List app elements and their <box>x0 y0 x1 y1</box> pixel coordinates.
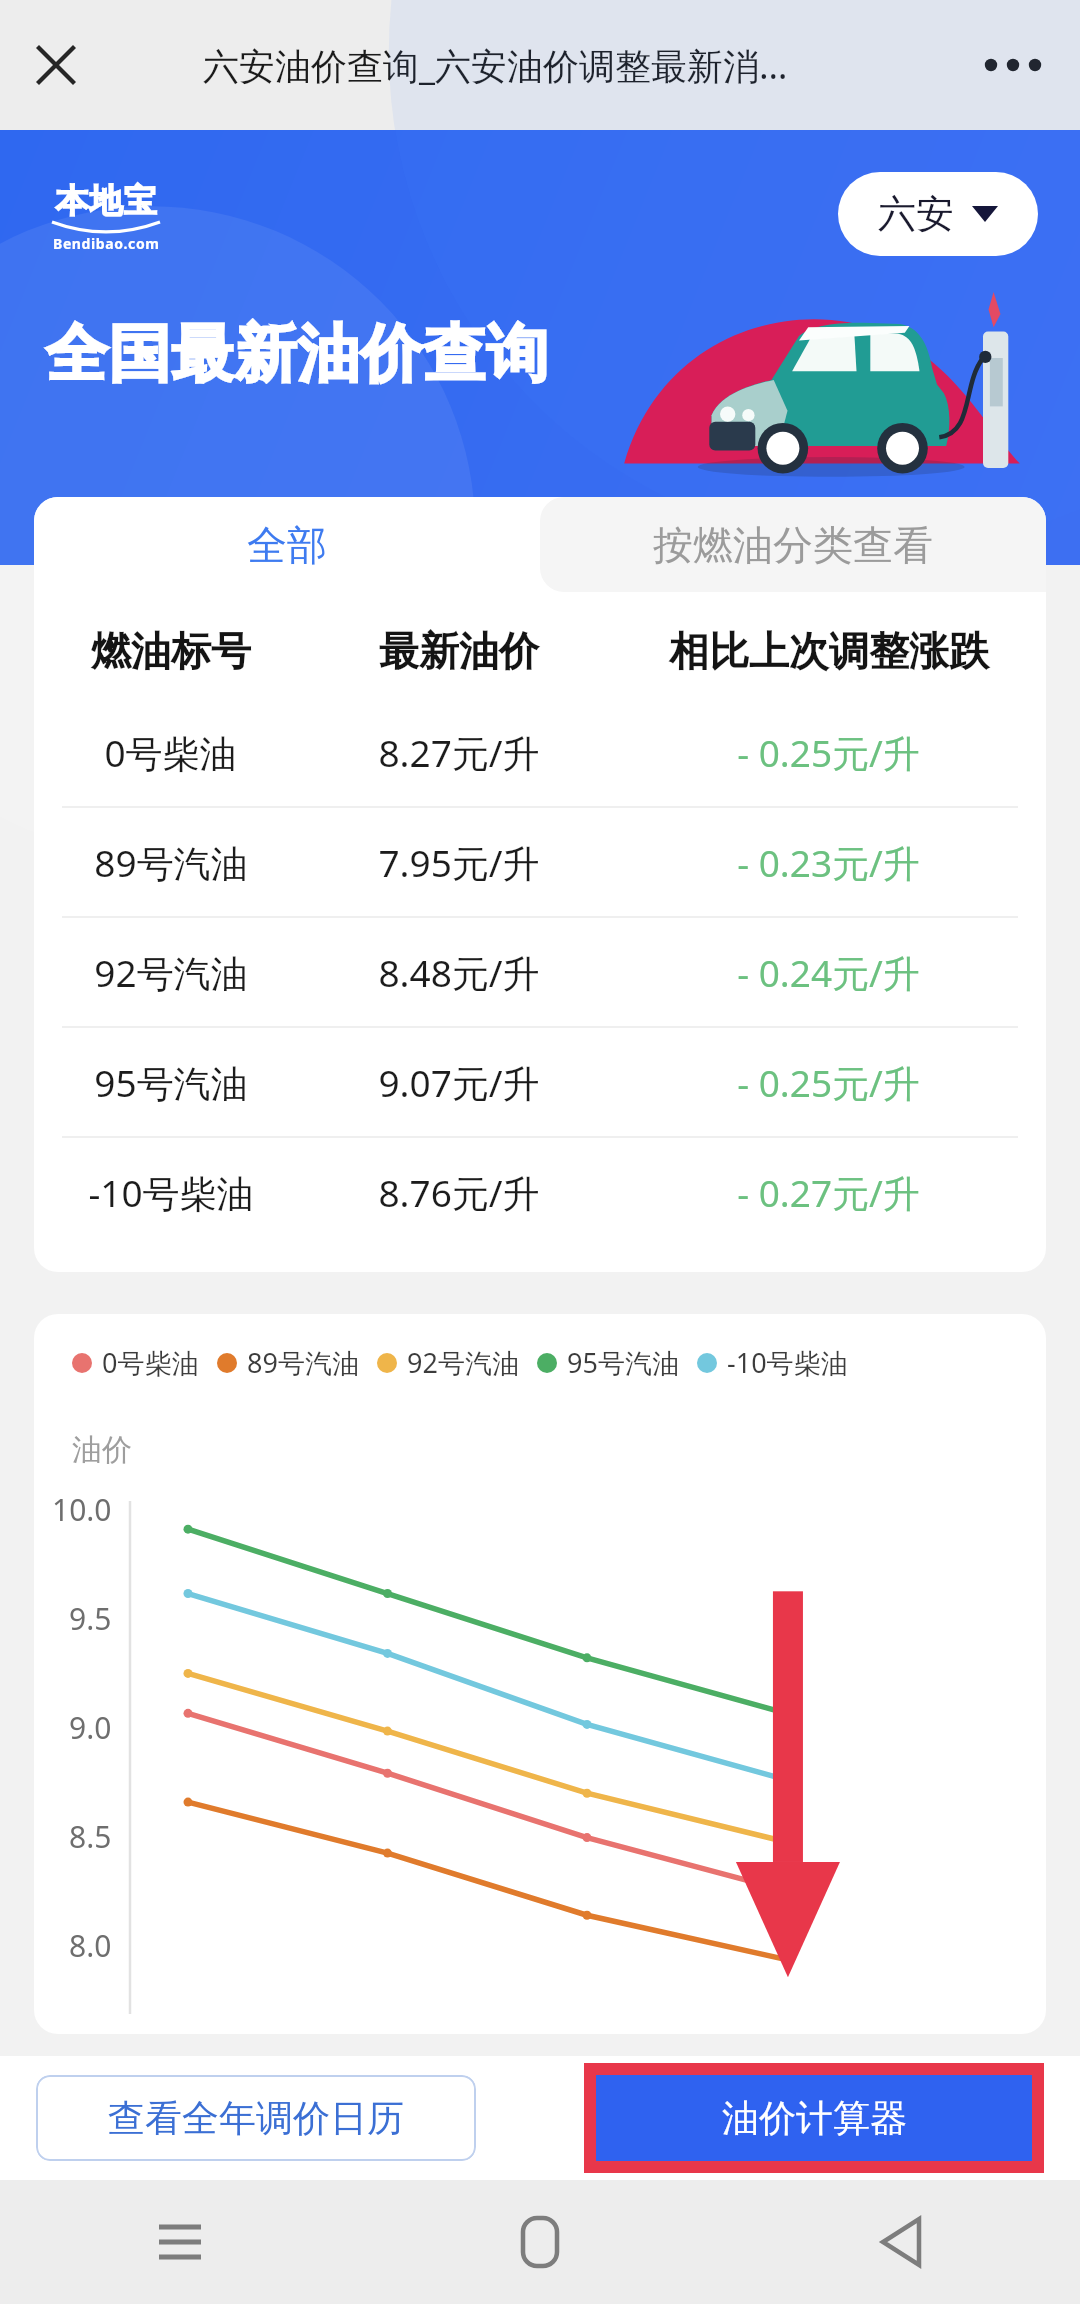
button[interactable]: Recents <box>0 2180 360 2304</box>
button[interactable]: -10号柴油 <box>34 1138 1046 1246</box>
staticText: 95号汽油 <box>567 1344 679 1381</box>
staticText: 9.0 <box>69 1707 112 1748</box>
staticText: 92号汽油 <box>407 1344 519 1381</box>
button[interactable]: More options <box>974 26 1052 104</box>
staticText: 油价计算器 <box>722 2095 907 2142</box>
staticText: 10.0 <box>52 1489 112 1530</box>
staticText: 最新油价 <box>379 626 539 676</box>
button[interactable]: Close <box>20 29 92 101</box>
staticText: 8.5 <box>69 1816 112 1857</box>
staticText: 92号汽油 <box>94 947 248 998</box>
button[interactable]: 89号汽油 <box>34 808 1046 916</box>
staticText: 89号汽油 <box>94 837 248 888</box>
staticText: 0号柴油 <box>102 1344 199 1381</box>
staticText: 燃油标号 <box>91 626 251 676</box>
staticText: 按燃油分类查看 <box>653 520 933 570</box>
staticText: 8.48元/升 <box>378 947 540 998</box>
staticText: 六安 <box>878 190 954 238</box>
button[interactable]: 全部 <box>34 497 540 592</box>
staticText: 油价 <box>72 1431 132 1469</box>
staticText: 0号柴油 <box>104 727 237 778</box>
staticText: 9.07元/升 <box>378 1057 540 1108</box>
staticText: - 0.25元/升 <box>737 727 920 778</box>
button[interactable]: 六安 <box>838 172 1038 256</box>
staticText: -10号柴油 <box>88 1167 254 1218</box>
staticText: 六安油价查询_六安油价调整最新消… <box>203 41 788 90</box>
staticText: 7.95元/升 <box>378 837 540 888</box>
staticText: - 0.27元/升 <box>737 1167 920 1218</box>
staticText: 本地宝 <box>55 180 157 222</box>
staticText: 95号汽油 <box>94 1057 248 1108</box>
staticText: 全部 <box>247 520 327 570</box>
staticText: 89号汽油 <box>247 1344 359 1381</box>
staticText: 9.5 <box>69 1598 112 1639</box>
staticText: - 0.24元/升 <box>737 947 920 998</box>
staticText: 查看全年调价日历 <box>108 2095 404 2142</box>
button[interactable]: 92号汽油 <box>34 918 1046 1026</box>
staticText: - 0.23元/升 <box>737 837 920 888</box>
button[interactable]: 按燃油分类查看 <box>540 497 1046 592</box>
button[interactable]: 95号汽油 <box>34 1028 1046 1136</box>
button[interactable]: Back <box>720 2180 1080 2304</box>
button[interactable]: 查看全年调价日历 <box>36 2075 476 2161</box>
button[interactable]: 油价计算器 <box>596 2075 1032 2161</box>
staticText: 相比上次调整涨跌 <box>669 626 989 676</box>
staticText: -10号柴油 <box>727 1344 848 1381</box>
staticText: 全国最新油价查询 <box>45 315 549 393</box>
staticText: - 0.25元/升 <box>737 1057 920 1108</box>
staticText: Bendibao.com <box>53 234 160 253</box>
staticText: 8.76元/升 <box>378 1167 540 1218</box>
button[interactable]: Home <box>360 2180 720 2304</box>
staticText: 8.0 <box>69 1925 112 1966</box>
button[interactable]: 0号柴油 <box>34 698 1046 806</box>
staticText: 8.27元/升 <box>378 727 540 778</box>
